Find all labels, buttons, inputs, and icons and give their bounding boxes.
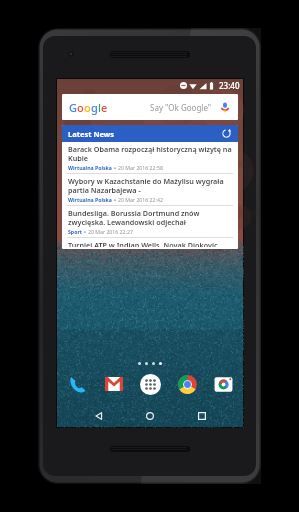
staticText: o: [77, 100, 84, 115]
staticText: Wirtualna Polska: [68, 164, 112, 171]
button[interactable]: Turniej ATP w Indian Wells. Novak Djokov…: [62, 238, 238, 249]
staticText: g: [91, 100, 98, 115]
staticText: 20 Mar 2016 22:42: [118, 196, 163, 203]
staticText: Wirtualna Polska: [68, 196, 112, 203]
button[interactable]: Latest News: [62, 125, 238, 142]
button[interactable]: Home: [140, 406, 160, 426]
staticText: •: [114, 164, 116, 171]
staticText: Latest News: [68, 129, 114, 139]
staticText: o: [84, 100, 91, 115]
button[interactable]: Gmail: [102, 372, 126, 396]
staticText: 23:40: [219, 80, 240, 91]
staticText: Say "Ok Google": [150, 102, 212, 113]
staticText: G: [69, 100, 77, 115]
staticText: 20 Mar 2016 22:58: [118, 164, 163, 171]
staticText: •: [84, 228, 86, 235]
button[interactable]: Chrome: [175, 372, 199, 396]
staticText: 20 Mar 2016 22:27: [88, 228, 133, 235]
staticText: •: [114, 196, 116, 203]
button[interactable]: Barack Obama rozpoczął historyczną wizyt…: [62, 142, 238, 173]
button[interactable]: Voice search: [219, 101, 231, 113]
staticText: Bundesliga. Borussia Dortmund znów zwyci…: [68, 208, 232, 227]
button[interactable]: G: [62, 94, 238, 120]
button[interactable]: Camera: [211, 372, 235, 396]
button[interactable]: Back: [89, 406, 109, 426]
staticText: Sport: [68, 228, 82, 235]
button[interactable]: Recents: [192, 406, 212, 426]
staticText: l: [98, 100, 101, 115]
staticText: Wybory w Kazachstanie do Mażylisu wygrał…: [68, 176, 232, 195]
button[interactable]: Phone: [65, 372, 89, 396]
staticText: Barack Obama rozpoczął historyczną wizyt…: [68, 144, 232, 163]
staticText: Turniej ATP w Indian Wells. Novak Djokov…: [68, 240, 232, 247]
button[interactable]: Bundesliga. Borussia Dortmund znów zwyci…: [62, 206, 238, 237]
staticText: e: [101, 100, 108, 115]
button[interactable]: Wybory w Kazachstanie do Mażylisu wygrał…: [62, 174, 238, 205]
button[interactable]: Apps: [138, 372, 162, 396]
button[interactable]: Refresh: [221, 128, 232, 139]
